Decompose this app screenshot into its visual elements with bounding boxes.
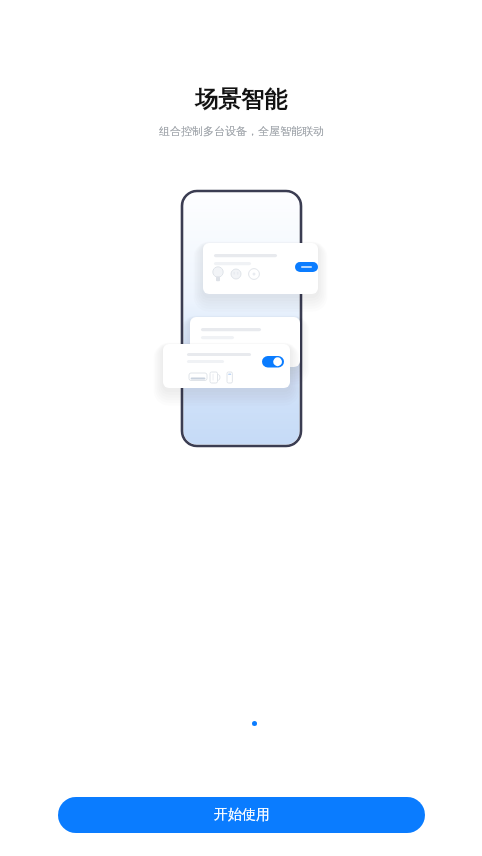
staticText: 开始使用 xyxy=(214,806,270,824)
button[interactable]: 开始使用 xyxy=(58,797,425,833)
staticText: 组合控制多台设备，全屋智能联动 xyxy=(159,124,324,138)
other: Smart scene illustration xyxy=(150,183,335,458)
staticText: 场景智能 xyxy=(195,85,287,114)
